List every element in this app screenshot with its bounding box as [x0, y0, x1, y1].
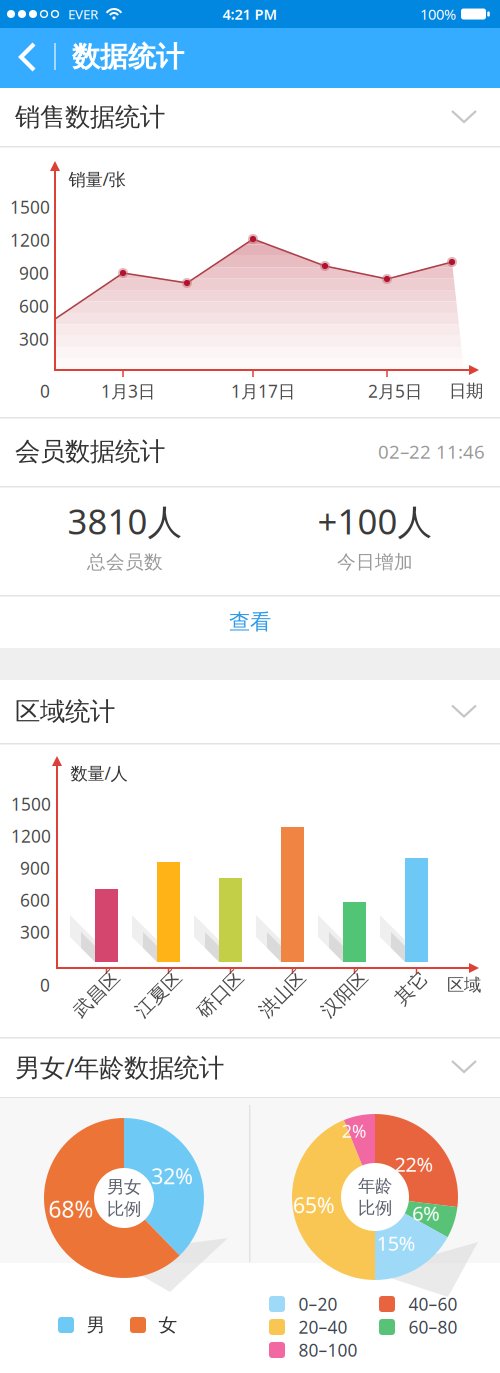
staticText: 总会员数 — [87, 550, 163, 573]
staticText: 销量/张 — [68, 167, 125, 190]
staticText: 900 — [19, 261, 49, 284]
staticText: 1200 — [11, 824, 51, 847]
staticText: 男女 — [107, 1176, 141, 1198]
staticText: 68% — [48, 1194, 93, 1224]
staticText: 32% — [151, 1162, 193, 1190]
staticText: 比例 — [358, 1197, 392, 1219]
button[interactable]: 查看 — [190, 600, 310, 644]
staticText: 300 — [20, 920, 50, 943]
staticText: 300 — [19, 327, 49, 350]
button[interactable]: 销售数据统计 — [0, 88, 500, 146]
staticText: 1200 — [10, 228, 50, 251]
staticText: 20–40 — [298, 1315, 347, 1338]
staticText: EVER — [68, 5, 98, 23]
staticText: 100% — [420, 4, 456, 24]
staticText: 15% — [376, 1230, 415, 1256]
staticText: 男 — [86, 1313, 105, 1336]
staticText: 1月3日 — [101, 379, 155, 402]
staticText: 查看 — [229, 609, 271, 635]
staticText: 6% — [412, 1200, 440, 1226]
button[interactable]: 男女/年龄数据统计 — [0, 1037, 500, 1097]
staticText: 汉阳区 — [316, 982, 373, 1005]
staticText: 男女/年龄数据统计 — [15, 1050, 224, 1084]
button[interactable]: 区域统计 — [0, 680, 500, 743]
staticText: 900 — [20, 856, 50, 879]
staticText: 60–80 — [408, 1315, 457, 1338]
staticText: 600 — [20, 888, 50, 911]
staticText: 1500 — [10, 195, 50, 218]
staticText: 区域 — [447, 974, 481, 996]
staticText: 会员数据统计 — [15, 436, 165, 467]
button[interactable]: Back — [5, 32, 49, 82]
staticText: +100人 — [317, 498, 432, 544]
staticText: 其它 — [392, 976, 430, 999]
staticText: 2% — [342, 1119, 366, 1142]
staticText: 数量/人 — [70, 761, 127, 784]
staticText: 80–100 — [298, 1338, 357, 1361]
staticText: 2月5日 — [368, 379, 422, 402]
staticText: 3810人 — [67, 498, 182, 544]
staticText: 1月17日 — [231, 379, 295, 402]
staticText: 0 — [40, 973, 50, 996]
staticText: 武昌区 — [68, 982, 125, 1005]
staticText: 销售数据统计 — [15, 101, 165, 132]
staticText: 比例 — [107, 1198, 141, 1220]
staticText: 40–60 — [408, 1292, 457, 1315]
staticText: 0 — [40, 379, 50, 402]
staticText: 洪山区 — [254, 982, 311, 1005]
staticText: 1500 — [11, 792, 51, 815]
staticText: 日期 — [449, 380, 483, 402]
staticText: 区域统计 — [15, 696, 115, 727]
staticText: 02–22 11:46 — [378, 439, 485, 464]
staticText: 4:21 PM — [222, 4, 277, 24]
staticText: 女 — [158, 1313, 177, 1336]
staticText: 数据统计 — [72, 40, 184, 74]
staticText: 22% — [394, 1151, 433, 1177]
staticText: 年龄 — [358, 1175, 392, 1197]
staticText: 今日增加 — [337, 550, 413, 573]
staticText: 0–20 — [298, 1292, 337, 1315]
staticText: 硚口区 — [192, 982, 249, 1005]
staticText: 江夏区 — [130, 982, 187, 1005]
staticText: 600 — [19, 294, 49, 317]
staticText: 65% — [293, 1191, 335, 1219]
